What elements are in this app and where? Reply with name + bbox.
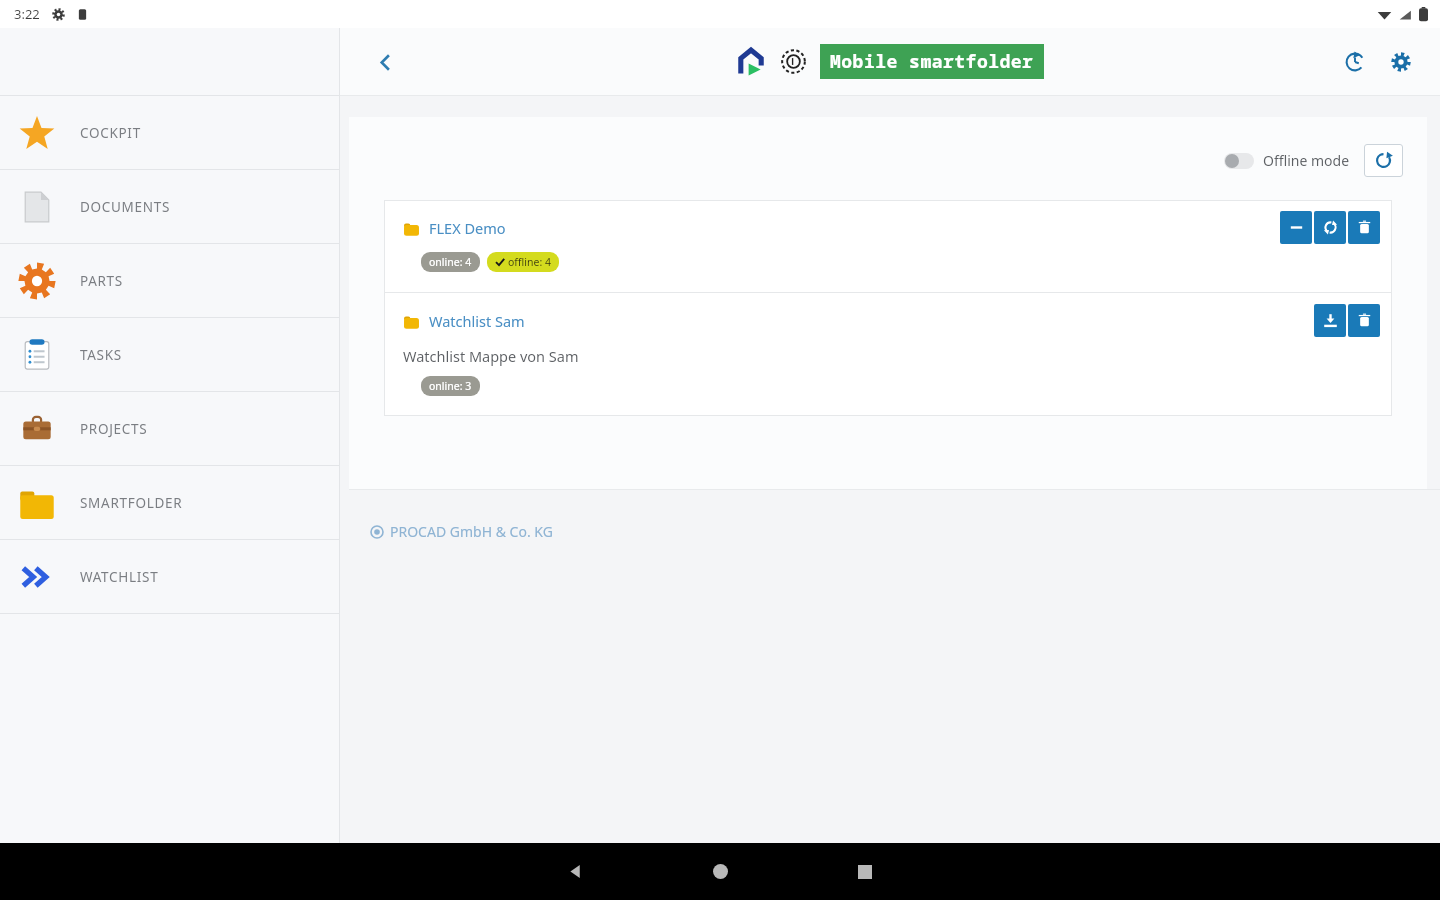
- button[interactable]: PROJECTS: [0, 392, 339, 465]
- staticText: offline: 4: [508, 255, 551, 269]
- staticText: FLEX Demo: [429, 218, 506, 238]
- button[interactable]: COCKPIT: [0, 96, 339, 169]
- button[interactable]: Back: [366, 43, 404, 81]
- button[interactable]: Refresh: [1364, 144, 1403, 177]
- button[interactable]: sync: [1314, 211, 1346, 244]
- staticText: Offline mode: [1263, 151, 1350, 170]
- staticText: PROJECTS: [80, 420, 148, 438]
- staticText: WATCHLIST: [80, 568, 159, 586]
- staticText: 3:22: [14, 5, 40, 23]
- staticText: COCKPIT: [80, 124, 141, 142]
- button[interactable]: Recents: [835, 843, 895, 900]
- button[interactable]: trash: [1348, 211, 1380, 244]
- button[interactable]: TASKS: [0, 318, 339, 391]
- staticText: Watchlist Mappe von Sam: [403, 346, 579, 366]
- button[interactable]: SMARTFOLDER: [0, 466, 339, 539]
- button[interactable]: Watchlist Sam: [384, 293, 1392, 416]
- staticText: TASKS: [80, 346, 122, 364]
- staticText: online: 3: [429, 379, 472, 393]
- button[interactable]: Offline mode: [1224, 151, 1350, 170]
- staticText: online: 4: [429, 255, 472, 269]
- staticText: PROCAD GmbH & Co. KG: [390, 522, 553, 541]
- button[interactable]: Home: [690, 843, 750, 900]
- button[interactable]: download: [1314, 304, 1346, 337]
- button[interactable]: trash: [1348, 304, 1380, 337]
- button[interactable]: DOCUMENTS: [0, 170, 339, 243]
- staticText: PARTS: [80, 272, 123, 290]
- button[interactable]: History: [1338, 45, 1372, 79]
- button[interactable]: minus: [1280, 211, 1312, 244]
- button[interactable]: Back: [545, 843, 605, 900]
- button[interactable]: PROCAD GmbH & Co. KG: [370, 522, 553, 541]
- staticText: DOCUMENTS: [80, 198, 171, 216]
- staticText: Watchlist Sam: [429, 311, 525, 331]
- button[interactable]: WATCHLIST: [0, 540, 339, 613]
- button[interactable]: Settings: [1384, 45, 1418, 79]
- staticText: SMARTFOLDER: [80, 494, 183, 512]
- button[interactable]: PARTS: [0, 244, 339, 317]
- staticText: Mobile smartfolder: [830, 49, 1034, 74]
- button[interactable]: FLEX Demo: [384, 200, 1392, 292]
